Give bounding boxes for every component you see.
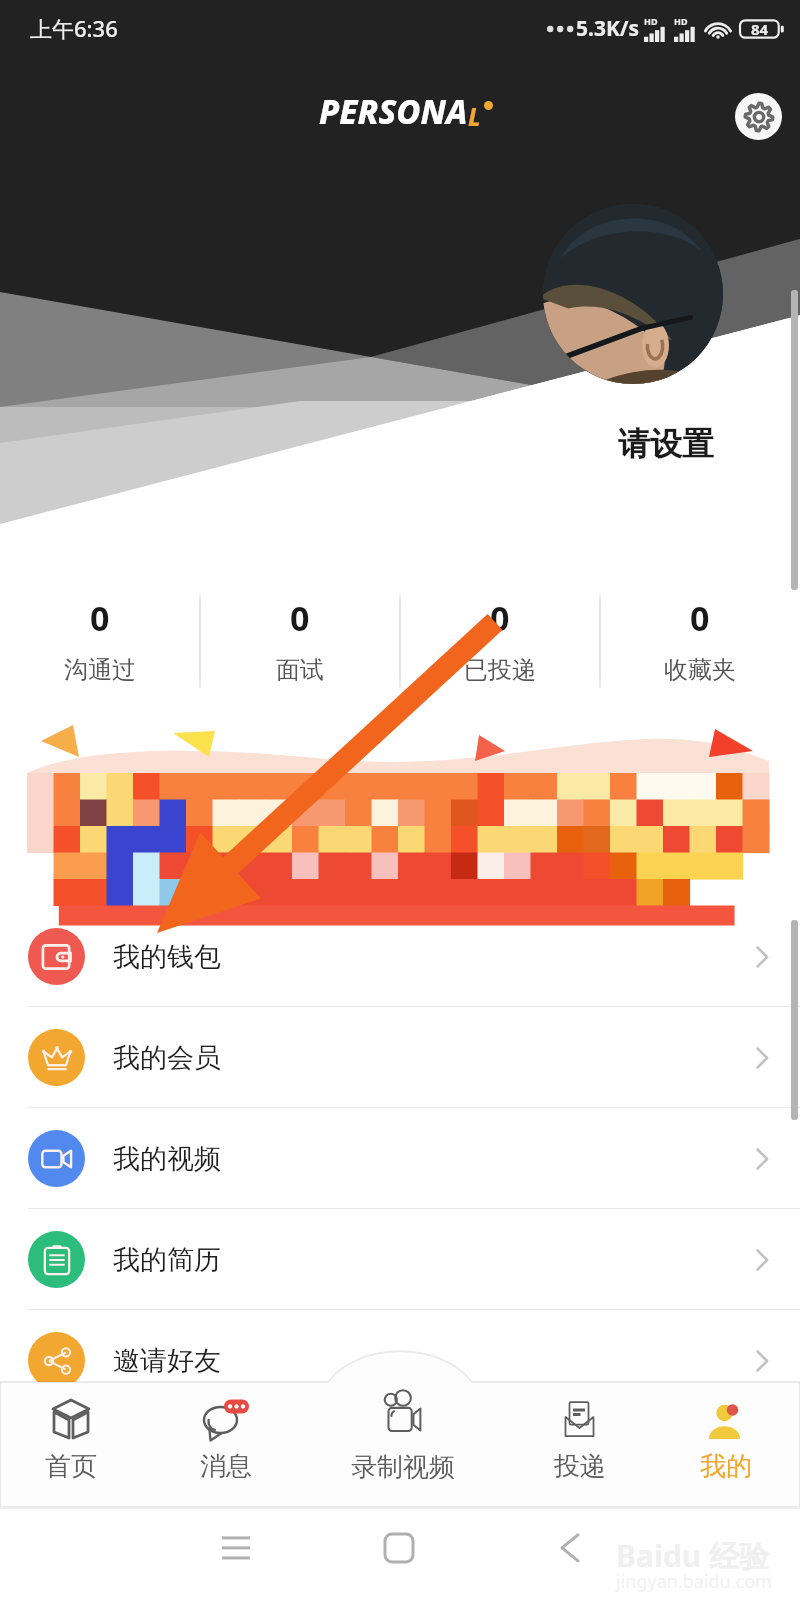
button[interactable]: 消息 xyxy=(151,1361,301,1479)
button[interactable]: 0 xyxy=(0,595,200,685)
staticText: 0 xyxy=(490,595,510,641)
staticText: 消息 xyxy=(200,1450,252,1479)
staticText: 我的简历 xyxy=(113,1243,221,1277)
button[interactable]: 0 xyxy=(200,595,400,685)
staticText: jingyan.baidu.com xyxy=(616,1569,772,1594)
button[interactable]: 请设置 xyxy=(618,424,714,464)
button[interactable]: 0 xyxy=(400,595,600,685)
staticText: 我的视频 xyxy=(113,1142,221,1176)
staticText: 面试 xyxy=(276,655,324,685)
button[interactable]: Settings xyxy=(735,93,782,140)
staticText: 收藏夹 xyxy=(664,655,736,685)
button[interactable]: 0 xyxy=(600,595,800,685)
staticText: 已投递 xyxy=(464,655,536,685)
staticText: 0 xyxy=(290,595,310,641)
staticText: HD xyxy=(644,15,658,27)
staticText: 首页 xyxy=(45,1450,97,1479)
staticText: 投递 xyxy=(554,1450,606,1479)
button[interactable]: 首页 xyxy=(0,1361,146,1479)
button[interactable]: 我的简历 xyxy=(0,1209,800,1310)
button[interactable]: 我的视频 xyxy=(0,1108,800,1209)
button[interactable]: 我的会员 xyxy=(0,1007,800,1108)
button[interactable]: 我的 xyxy=(651,1361,800,1479)
staticText: 我的 xyxy=(700,1450,752,1479)
staticText: 0 xyxy=(90,595,110,641)
staticText: PERSONA xyxy=(319,89,468,134)
staticText: 沟通过 xyxy=(64,655,136,685)
button[interactable]: Avatar xyxy=(543,204,723,384)
staticText: L xyxy=(468,100,481,133)
staticText: 0 xyxy=(690,595,710,641)
button[interactable]: 录制视频 xyxy=(315,1361,491,1479)
button[interactable]: 我的钱包 xyxy=(0,906,800,1007)
staticText: 我的会员 xyxy=(113,1041,221,1075)
staticText: 邀请好友 xyxy=(113,1344,221,1378)
staticText: 我的钱包 xyxy=(113,940,221,974)
staticText: 上午6:36 xyxy=(30,13,118,43)
staticText: 5.3K/s xyxy=(576,14,640,43)
button[interactable]: 邀请好友 xyxy=(0,1310,800,1411)
button[interactable]: 投递 xyxy=(505,1361,655,1479)
staticText: 84 xyxy=(751,19,769,39)
staticText: 录制视频 xyxy=(351,1451,455,1479)
staticText: HD xyxy=(674,15,688,27)
staticText: Baidu 经验 xyxy=(616,1535,770,1576)
